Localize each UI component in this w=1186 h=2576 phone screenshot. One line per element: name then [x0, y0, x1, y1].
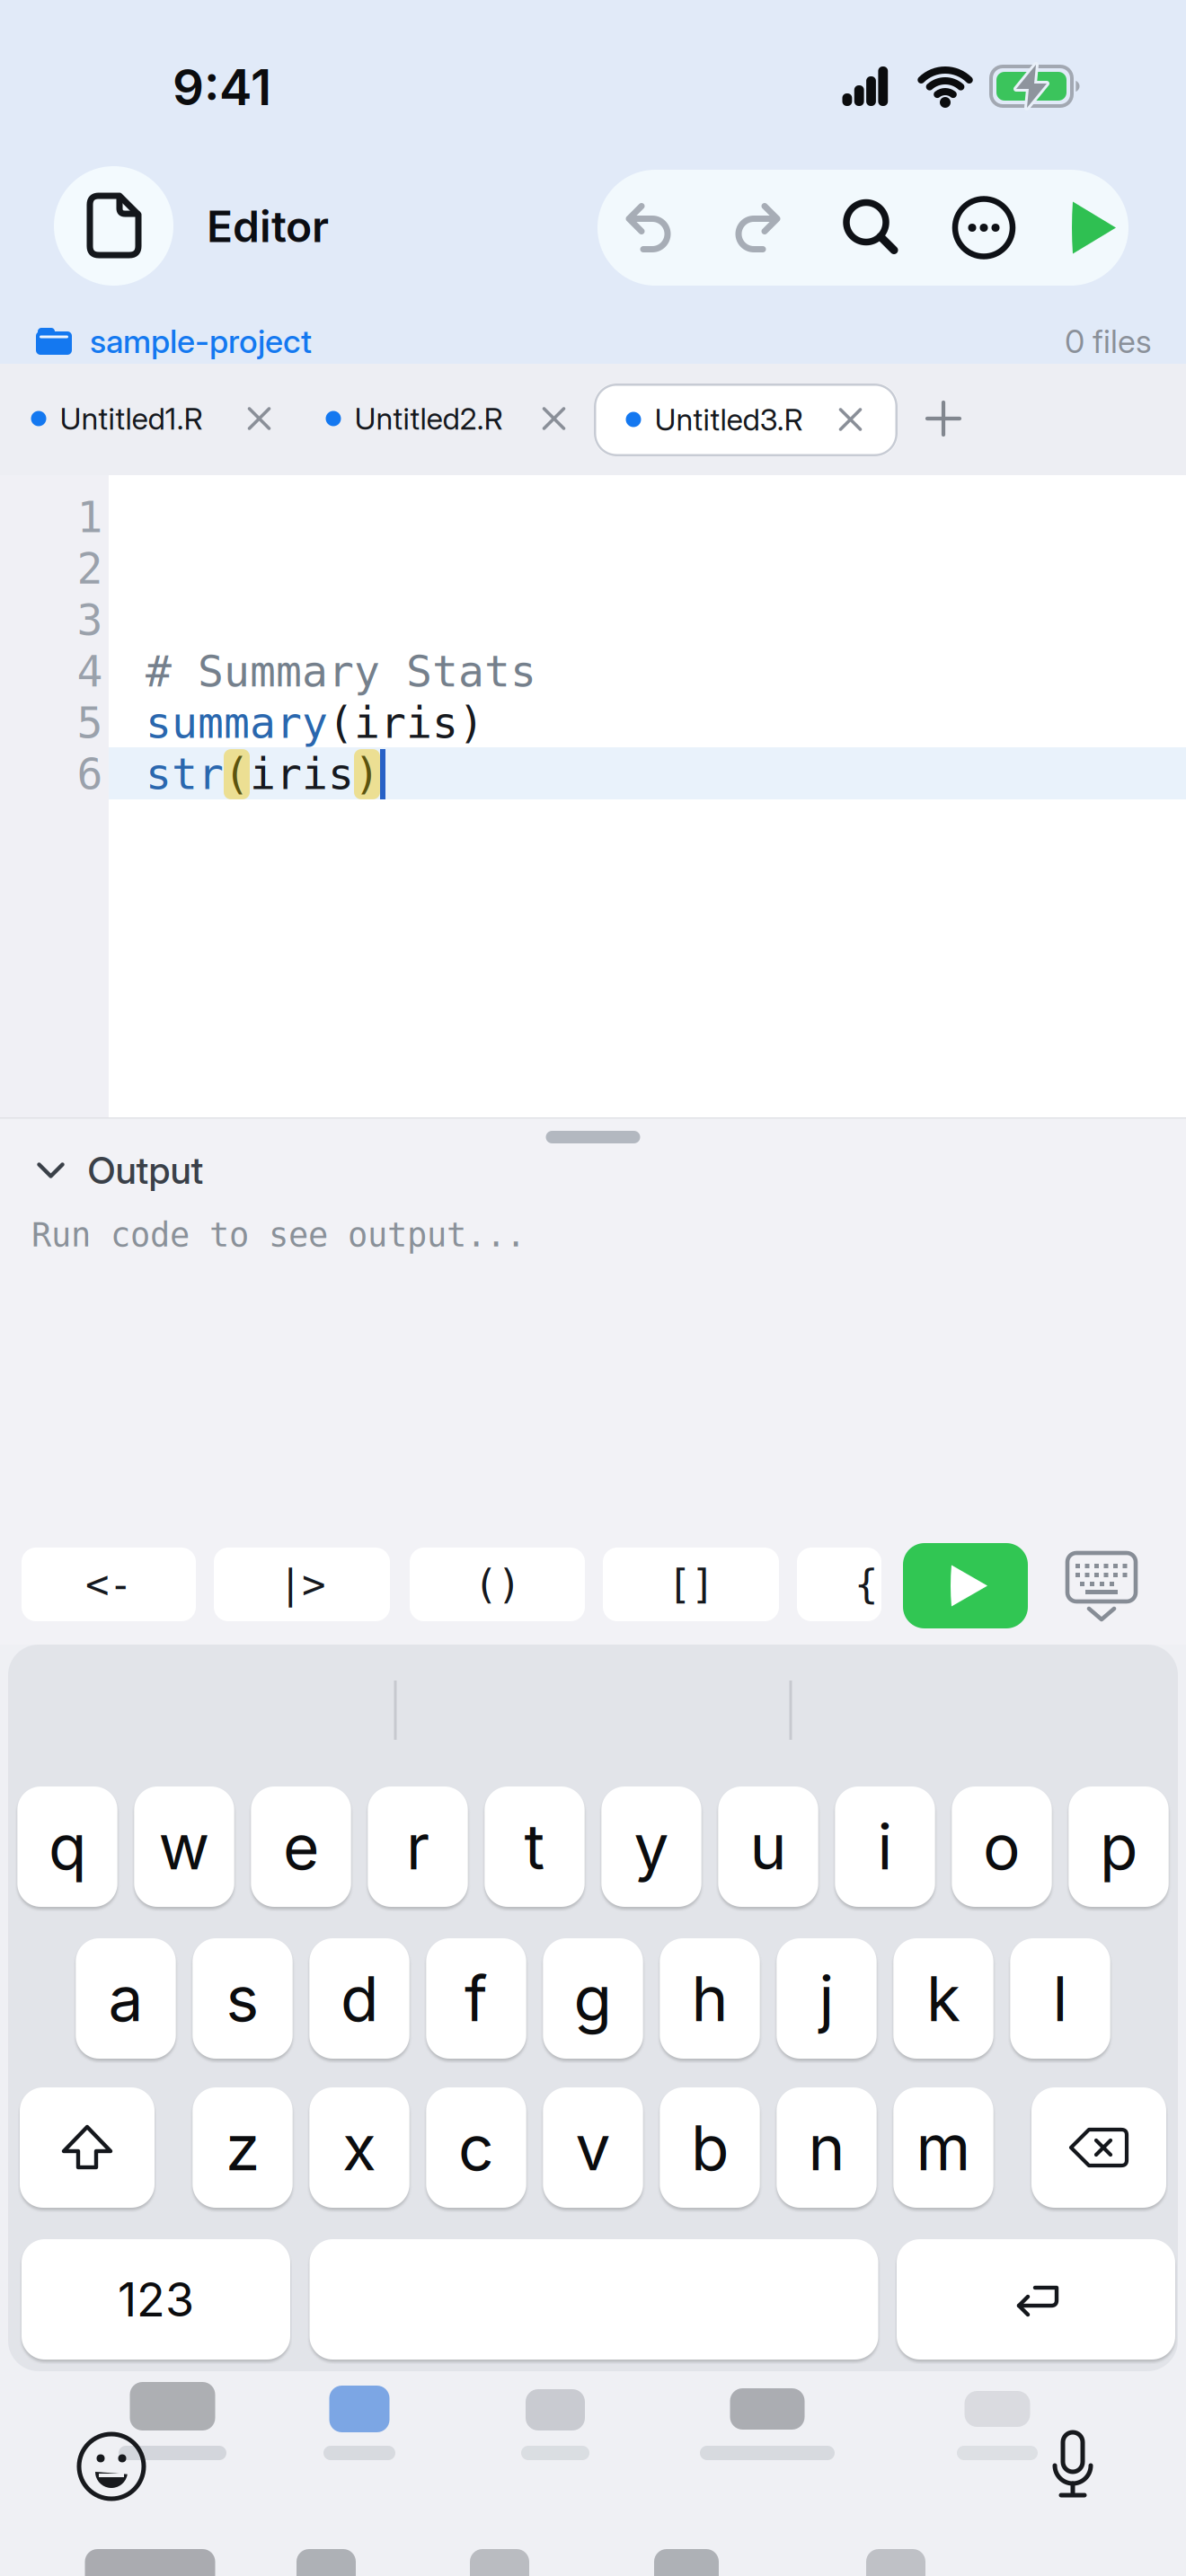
button[interactable]: []	[603, 1548, 779, 1621]
button[interactable]: |>	[214, 1548, 390, 1621]
button[interactable]: d	[309, 1938, 409, 2059]
staticText: o	[983, 1810, 1021, 1883]
staticText: Untitled2.R	[354, 401, 503, 436]
staticText: n	[808, 2111, 845, 2184]
button[interactable]: Untitled3.R	[626, 393, 862, 446]
staticText: summary	[146, 698, 328, 748]
button[interactable]	[1031, 2087, 1166, 2208]
button[interactable]: l	[1010, 1938, 1110, 2059]
button[interactable]	[709, 174, 806, 282]
staticText: h	[691, 1962, 728, 2035]
staticText: []	[668, 1561, 714, 1607]
button[interactable]: h	[660, 1938, 760, 2059]
button[interactable]: <-	[22, 1548, 196, 1621]
button[interactable]: y	[601, 1786, 701, 1907]
button[interactable]: g	[543, 1938, 643, 2059]
button[interactable]: sample-project	[18, 314, 323, 368]
button[interactable]	[310, 2239, 878, 2360]
staticText: 2	[77, 544, 103, 594]
button[interactable]	[1049, 174, 1139, 282]
button[interactable]: Output	[37, 1148, 204, 1192]
staticText: y	[634, 1810, 669, 1883]
staticText: Run code to see output...	[31, 1216, 526, 1254]
button[interactable]	[935, 174, 1032, 282]
button[interactable]: p	[1069, 1786, 1169, 1907]
staticText: j	[819, 1962, 834, 2035]
staticText: (iris)	[328, 698, 484, 748]
button[interactable]: a	[76, 1938, 176, 2059]
staticText: Untitled1.R	[60, 401, 203, 436]
staticText: 6	[77, 749, 103, 799]
staticText: 3	[77, 595, 103, 645]
button[interactable]: Untitled2.R	[326, 392, 566, 446]
staticText: u	[750, 1810, 787, 1883]
button[interactable]	[1049, 2430, 1097, 2500]
button[interactable]: {	[797, 1548, 881, 1621]
button[interactable]	[77, 2432, 146, 2501]
button[interactable]: b	[660, 2087, 760, 2208]
button[interactable]: r	[368, 1786, 468, 1907]
button[interactable]: j	[777, 1938, 877, 2059]
button[interactable]: e	[251, 1786, 351, 1907]
staticText: t	[524, 1810, 545, 1883]
staticText: Output	[88, 1148, 204, 1192]
staticText: 1	[77, 492, 103, 543]
staticText: 9:41	[173, 58, 271, 116]
staticText: m	[916, 2111, 971, 2184]
button[interactable]	[823, 174, 920, 282]
button[interactable]: z	[193, 2087, 293, 2208]
staticText: (	[224, 749, 250, 799]
button[interactable]	[600, 174, 697, 282]
button[interactable]: c	[426, 2087, 526, 2208]
staticText: Untitled3.R	[655, 402, 803, 437]
staticText: f	[465, 1962, 488, 2035]
staticText: # Summary Stats	[146, 646, 536, 697]
staticText: Editor	[207, 201, 329, 252]
button[interactable]: ()	[410, 1548, 585, 1621]
staticText: iris	[250, 749, 354, 799]
button[interactable]: f	[426, 1938, 526, 2059]
button[interactable]: m	[893, 2087, 993, 2208]
staticText: r	[406, 1810, 429, 1883]
staticText: b	[691, 2111, 729, 2184]
staticText: p	[1100, 1810, 1137, 1883]
staticText: 123	[118, 2272, 194, 2327]
button[interactable]: w	[134, 1786, 234, 1907]
button[interactable]: 123	[22, 2239, 290, 2360]
staticText: s	[226, 1962, 259, 2035]
button[interactable]	[925, 401, 961, 437]
button[interactable]: k	[893, 1938, 993, 2059]
staticText: g	[574, 1962, 612, 2035]
staticText: z	[226, 2111, 260, 2184]
button[interactable]: q	[17, 1786, 117, 1907]
staticText: e	[283, 1810, 319, 1883]
staticText: a	[108, 1962, 143, 2035]
staticText: x	[342, 2111, 376, 2184]
button[interactable]: s	[193, 1938, 293, 2059]
button[interactable]	[897, 2239, 1175, 2360]
button[interactable]: v	[543, 2087, 643, 2208]
staticText: ()	[474, 1561, 521, 1607]
staticText: d	[341, 1962, 378, 2035]
staticText: k	[926, 1962, 960, 2035]
staticText: c	[458, 2111, 494, 2184]
staticText: l	[1053, 1962, 1068, 2035]
button[interactable]: n	[777, 2087, 877, 2208]
staticText: 0 files	[1065, 322, 1152, 360]
staticText: 4	[77, 646, 103, 697]
button[interactable]: x	[309, 2087, 409, 2208]
button[interactable]: o	[952, 1786, 1052, 1907]
button[interactable]: t	[485, 1786, 585, 1907]
button[interactable]	[20, 2087, 155, 2208]
button[interactable]	[903, 1543, 1028, 1628]
button[interactable]: Untitled1.R	[31, 392, 271, 446]
button[interactable]	[1064, 1553, 1139, 1623]
staticText: v	[575, 2111, 611, 2184]
staticText: q	[49, 1810, 86, 1883]
staticText: |>	[279, 1561, 325, 1607]
button[interactable]: u	[718, 1786, 818, 1907]
staticText: sample-project	[90, 322, 312, 360]
button[interactable]: i	[835, 1786, 935, 1907]
staticText: str	[146, 749, 224, 799]
staticText: <-	[85, 1561, 132, 1607]
